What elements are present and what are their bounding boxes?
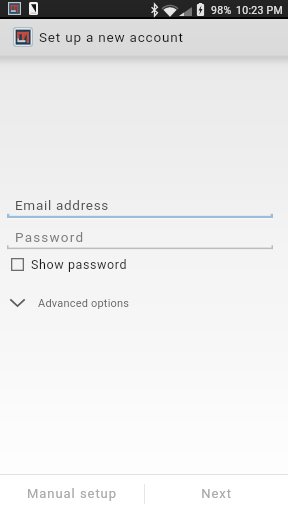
- staticText: Manual setup: [27, 486, 117, 501]
- staticText: Show password: [31, 257, 128, 272]
- other: Email: [13, 27, 33, 47]
- button[interactable]: Email: [0, 19, 288, 55]
- button[interactable]: Show password: [11, 254, 137, 274]
- button[interactable]: Email address: [15, 197, 109, 213]
- button[interactable]: Next: [144, 475, 288, 512]
- button[interactable]: Advanced options: [10, 294, 132, 312]
- button[interactable]: Password: [15, 229, 85, 245]
- staticText: Next: [201, 486, 232, 501]
- staticText: Password: [15, 229, 85, 245]
- button[interactable]: Manual setup: [0, 475, 144, 512]
- staticText: 98%: [211, 4, 232, 16]
- staticText: Advanced options: [38, 297, 130, 310]
- staticText: Email address: [15, 197, 109, 213]
- staticText: 10:23 PM: [236, 4, 283, 16]
- staticText: Set up a new account: [39, 29, 184, 45]
